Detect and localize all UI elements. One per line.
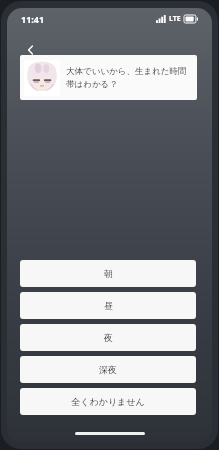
staticText: 朝: [104, 268, 113, 279]
staticText: 大体でいいから、生まれた時間帯はわかる？: [66, 66, 193, 89]
button[interactable]: Back: [20, 39, 42, 61]
button[interactable]: 朝: [20, 260, 196, 287]
button[interactable]: 大体でいいから、生まれた時間帯はわかる？: [20, 55, 197, 100]
staticText: 昼: [104, 300, 113, 311]
staticText: 夜: [104, 332, 113, 343]
button[interactable]: 昼: [20, 292, 196, 319]
staticText: 11:41: [21, 13, 45, 25]
staticText: LTE: [169, 14, 181, 24]
button[interactable]: 全くわかりません: [20, 388, 196, 415]
button[interactable]: 夜: [20, 324, 196, 351]
staticText: 全くわかりません: [71, 396, 145, 407]
staticText: 深夜: [99, 364, 117, 375]
button[interactable]: 深夜: [20, 356, 196, 383]
